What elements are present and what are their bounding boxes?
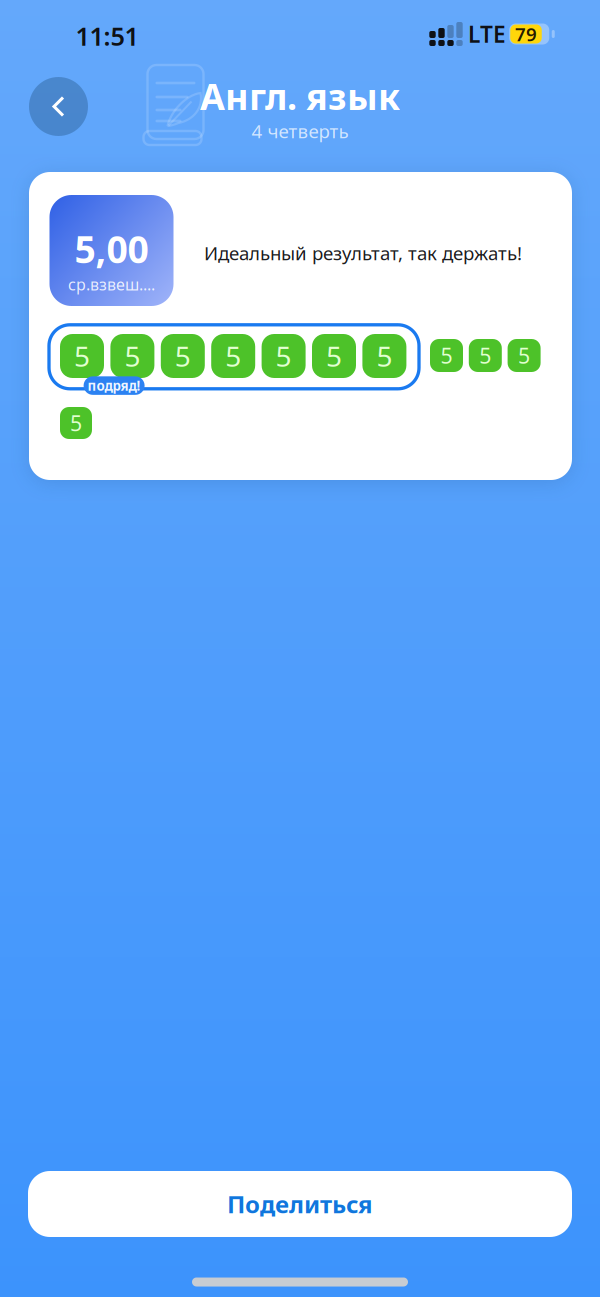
staticText: 5,00 — [74, 224, 148, 274]
staticText: Англ. язык — [200, 72, 400, 120]
button[interactable]: Поделиться — [28, 1171, 572, 1237]
staticText: 5 — [376, 337, 392, 375]
staticText: 5 — [518, 341, 530, 370]
staticText: 11:51 — [76, 19, 139, 53]
staticText: 5 — [326, 337, 342, 375]
staticText: 5 — [440, 341, 452, 370]
staticText: Идеальный результат, так держать! — [204, 241, 522, 265]
staticText: 79 — [515, 22, 537, 46]
staticText: 5 — [74, 337, 90, 375]
staticText: 5 — [124, 337, 140, 375]
staticText: LTE — [468, 19, 506, 49]
staticText: 5 — [276, 337, 292, 375]
staticText: подряд! — [88, 377, 141, 394]
staticText: 5 — [225, 337, 241, 375]
staticText: Поделиться — [227, 1188, 373, 1220]
staticText: 4 четверть — [251, 119, 348, 143]
staticText: 5 — [70, 409, 82, 437]
staticText: 5 — [479, 341, 491, 370]
staticText: 5 — [175, 337, 191, 375]
button[interactable]: Back — [29, 77, 88, 136]
staticText: ср.взвеш.... — [68, 274, 155, 295]
